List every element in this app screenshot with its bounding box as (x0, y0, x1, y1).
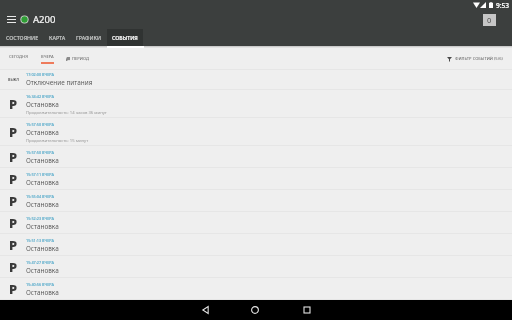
button[interactable]: P (0, 190, 512, 212)
button[interactable]: P (0, 90, 512, 118)
staticText: ФИЛЬТР СОБЫТИЙ (5/6) (455, 56, 503, 62)
staticText: ВЫКЛ (8, 77, 19, 82)
button[interactable]: СЕГОДНЯ (6, 51, 31, 67)
staticText: 15:57:11 ВЧЕРА (26, 172, 54, 177)
button[interactable]: P (0, 234, 512, 256)
staticText: Остановка (26, 266, 59, 275)
staticText: Остановка (26, 244, 59, 253)
staticText: P (9, 148, 18, 166)
staticText: 15:57:50 ВЧЕРА (26, 122, 54, 127)
staticText: Остановка (26, 156, 59, 165)
staticText: 15:57:50 ВЧЕРА (26, 150, 54, 155)
button[interactable]: Recent apps (297, 300, 317, 320)
staticText: Остановка (26, 288, 59, 297)
staticText: 15:52:23 ВЧЕРА (26, 216, 54, 221)
button[interactable]: P (0, 118, 512, 146)
staticText: A200 (33, 13, 56, 26)
button[interactable]: P (0, 256, 512, 278)
button[interactable]: P (0, 146, 512, 168)
staticText: P (9, 170, 18, 188)
staticText: Остановка (26, 200, 59, 209)
staticText: P (9, 192, 18, 210)
staticText: P (9, 258, 18, 276)
button[interactable]: ВЧЕРА (38, 51, 57, 67)
staticText: Продолжительность: 15 минут (26, 138, 89, 144)
staticText: P (9, 236, 18, 254)
button[interactable]: КАРТА (44, 29, 71, 46)
button[interactable]: ФИЛЬТР СОБЫТИЙ (5/6) (443, 52, 507, 66)
staticText: СЕГОДНЯ (9, 54, 28, 60)
staticText: КАРТА (49, 34, 66, 41)
staticText: 0 (487, 15, 492, 25)
button[interactable]: P (0, 168, 512, 190)
staticText: 9:53 (496, 1, 510, 10)
staticText: Остановка (26, 100, 59, 109)
staticText: СОСТОЯНИЕ (6, 34, 39, 41)
staticText: ВЧЕРА (41, 54, 54, 60)
button[interactable]: Open navigation menu (5, 13, 18, 26)
staticText: 15:51:13 ВЧЕРА (26, 238, 54, 243)
button[interactable]: ПЕРИОД (62, 52, 94, 66)
button[interactable]: Back (195, 300, 215, 320)
staticText: P (9, 214, 18, 232)
button[interactable]: ВЫКЛ (0, 70, 512, 90)
button[interactable]: СОБЫТИЯ (107, 29, 143, 46)
staticText: P (9, 280, 18, 298)
button[interactable]: P (0, 278, 512, 300)
staticText: P (9, 95, 18, 113)
button[interactable]: 0 (483, 14, 496, 26)
staticText: СОБЫТИЯ (112, 34, 138, 41)
staticText: 15:47:27 ВЧЕРА (26, 260, 54, 265)
button[interactable]: P (0, 212, 512, 234)
button[interactable]: P (0, 300, 512, 320)
staticText: Остановка (26, 178, 59, 187)
staticText: Продолжительность: 14 часов 36 минут (26, 110, 107, 116)
staticText: ГРАФИКИ (76, 34, 102, 41)
staticText: 17:02:00 ВЧЕРА (26, 72, 54, 77)
staticText: Отключение питания (26, 78, 93, 87)
button[interactable]: ГРАФИКИ (71, 29, 107, 46)
staticText: 15:40:56 ВЧЕРА (26, 282, 54, 287)
staticText: ПЕРИОД (72, 56, 90, 62)
staticText: 15:55:04 ВЧЕРА (26, 194, 54, 199)
staticText: 16:34:42 ВЧЕРА (26, 94, 54, 99)
staticText: Остановка (26, 128, 59, 137)
button[interactable]: СОСТОЯНИЕ (1, 29, 44, 46)
button[interactable]: Home (245, 300, 265, 320)
staticText: Остановка (26, 222, 59, 231)
staticText: P (9, 123, 18, 141)
